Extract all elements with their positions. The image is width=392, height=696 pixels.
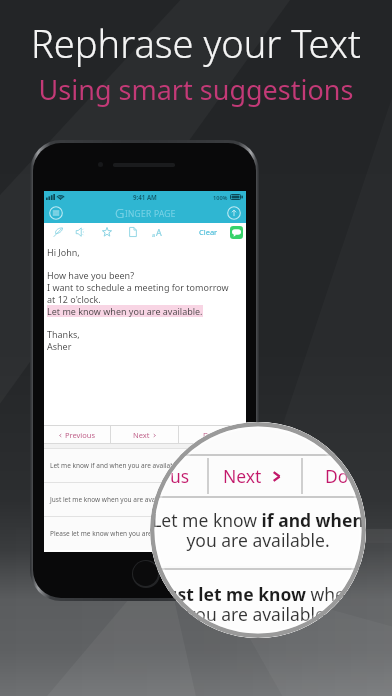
button[interactable]: Let me know if and when [150,498,366,566]
staticText: Clear [199,227,218,237]
button[interactable]: Done [179,426,246,443]
staticText: Just let me know when you are available. [50,495,174,504]
button[interactable]: Copy [123,223,142,241]
button[interactable]: Do [303,456,366,496]
button[interactable]: Next [111,426,178,443]
staticText: Let me know if and when you are availabl… [50,461,182,470]
staticText: you are available. [150,528,366,552]
staticText: 100% [213,194,228,202]
staticText: PAGE [154,208,176,220]
button[interactable]: Let me know if and when you are availabl… [44,449,246,482]
staticText: Rephrase your Text [0,17,392,69]
staticText: Do [325,464,349,488]
button[interactable]: Favorite [97,223,116,241]
staticText: Let me know when you are available. [47,305,203,317]
button[interactable]: Clear [191,223,225,241]
staticText: 9:41 AM [133,193,157,201]
staticText: Previous [65,430,96,440]
staticText: Please let me know when you are availabl… [50,529,182,538]
staticText: INGER [125,208,152,220]
staticText: G [115,204,125,222]
staticText: I want to schedule a meeting for tomorro… [47,281,229,293]
staticText: you are available. [150,602,366,626]
button[interactable]: Next [209,456,301,496]
button[interactable]: a [148,223,165,241]
staticText: a [152,231,156,238]
staticText: A [156,226,162,238]
staticText: Done [203,430,222,440]
button[interactable]: Spell check [48,223,67,241]
staticText: Thanks, [47,328,80,340]
button[interactable]: Please let me know when you are availabl… [44,517,246,550]
button[interactable]: Menu [44,202,246,223]
staticText: How have you been? [47,269,135,281]
staticText: Using smart suggestions [0,71,392,108]
button[interactable]: Menu [49,206,63,220]
button[interactable]: Chat [226,223,246,241]
staticText: at 12 o'clock. [47,293,101,305]
staticText: Next [133,430,150,440]
staticText: us [170,464,190,488]
staticText: Hi John, [47,246,80,258]
button[interactable]: Read aloud [71,223,90,241]
button[interactable]: Previous [44,426,110,443]
staticText: Let me know if and when [150,508,366,532]
button[interactable]: Just let me know when you are available. [44,483,246,516]
button[interactable]: us [150,456,207,496]
staticText: Asher [47,340,72,352]
staticText: Just let me know when [150,582,366,606]
button[interactable]: Share [227,206,241,220]
button[interactable]: Just let me know when [150,570,366,638]
staticText: Next [223,464,262,488]
